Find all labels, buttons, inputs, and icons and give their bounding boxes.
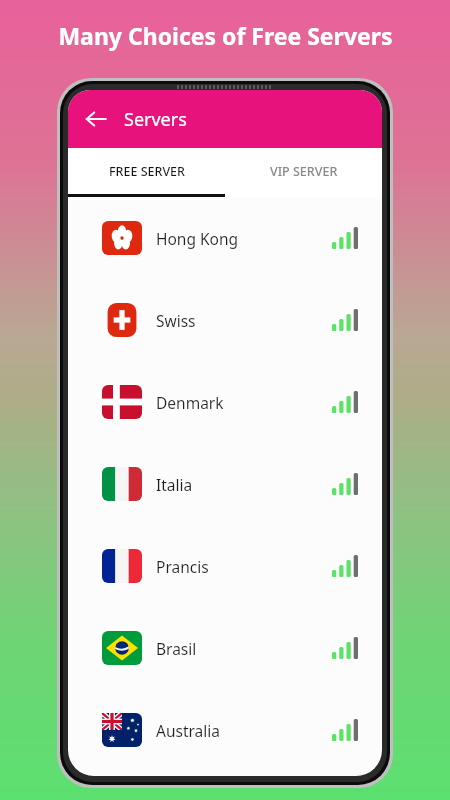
staticText: Prancis <box>156 556 209 577</box>
staticText: Servers <box>124 107 187 132</box>
staticText: Hong Kong <box>156 228 239 249</box>
button[interactable]: Australia <box>68 689 382 771</box>
staticText: Italia <box>156 474 193 495</box>
button[interactable]: Prancis <box>68 525 382 607</box>
staticText: Brasil <box>156 638 197 659</box>
staticText: VIP SERVER <box>270 163 338 180</box>
button[interactable]: FREE SERVER <box>68 148 225 194</box>
button[interactable]: Hong Kong <box>68 197 382 279</box>
button[interactable]: Swiss <box>68 279 382 361</box>
staticText: FREE SERVER <box>109 163 185 180</box>
button[interactable]: Brasil <box>68 607 382 689</box>
staticText: Many Choices of Free Servers <box>58 20 393 51</box>
button[interactable]: VIP SERVER <box>225 148 382 194</box>
staticText: Denmark <box>156 392 224 413</box>
button[interactable]: Back <box>76 99 116 139</box>
button[interactable]: Italia <box>68 443 382 525</box>
staticText: Australia <box>156 720 220 741</box>
staticText: Swiss <box>156 310 196 331</box>
button[interactable]: Denmark <box>68 361 382 443</box>
